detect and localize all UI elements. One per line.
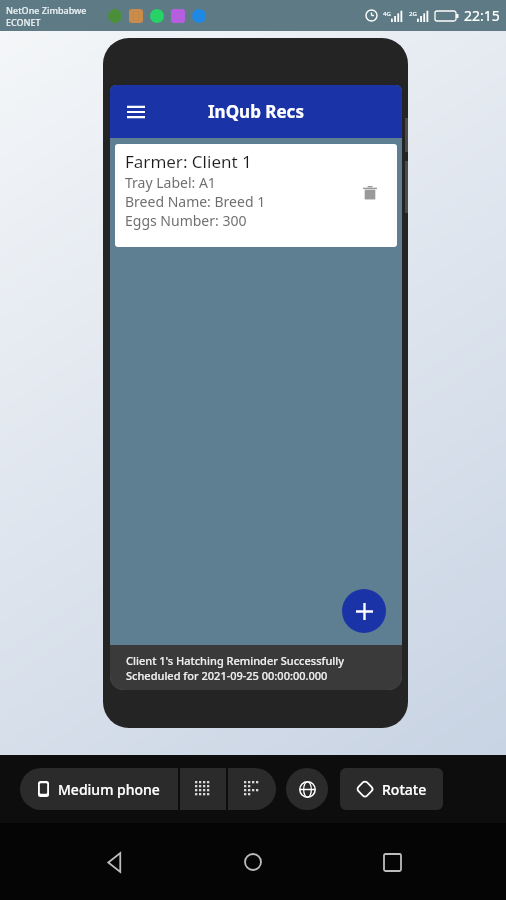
staticText: Scheduled for 2021-09-25 00:00:00.000 (126, 668, 328, 683)
staticText: Breed Name: Breed 1 (125, 192, 266, 211)
staticText: Tray Label: A1 (125, 173, 216, 192)
button[interactable]: Device list (180, 768, 226, 810)
button[interactable]: Delete record (357, 180, 383, 206)
button[interactable]: Back (91, 838, 139, 886)
button[interactable]: Open navigation menu (118, 94, 154, 130)
staticText: Medium phone (58, 780, 160, 799)
button[interactable]: Home (229, 838, 277, 886)
staticText: InQub Recs (208, 100, 304, 123)
button[interactable]: Recent apps (368, 838, 416, 886)
button[interactable]: Rotate (340, 768, 443, 810)
button[interactable]: Farmer: Client 1 (115, 144, 397, 247)
staticText: 22:15 (464, 6, 500, 25)
button[interactable]: Locale (286, 768, 328, 810)
button[interactable]: Medium phone (20, 768, 178, 810)
staticText: Farmer: Client 1 (125, 150, 252, 173)
staticText: 2G (409, 10, 417, 18)
button[interactable]: Add record (342, 589, 386, 633)
staticText: Eggs Number: 300 (125, 211, 247, 230)
staticText: ECONET (6, 16, 41, 28)
staticText: 4G (383, 10, 391, 18)
staticText: Rotate (382, 780, 427, 799)
button[interactable]: Device layout (228, 768, 276, 810)
staticText: Client 1's Hatching Reminder Successfull… (126, 653, 345, 668)
staticText: NetOne Zimbabwe (6, 4, 87, 16)
